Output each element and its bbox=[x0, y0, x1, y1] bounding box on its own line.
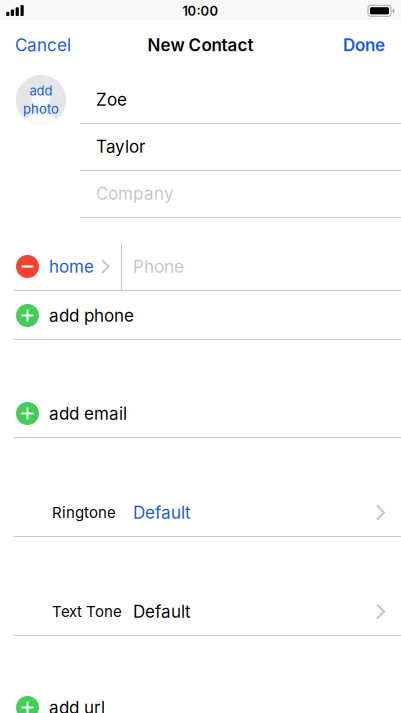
staticText: Taylor bbox=[96, 136, 145, 157]
button[interactable]: Done bbox=[343, 20, 401, 70]
staticText: add url bbox=[49, 697, 105, 713]
staticText: Phone bbox=[133, 256, 184, 277]
button[interactable]: home bbox=[0, 243, 109, 290]
staticText: add phone bbox=[49, 305, 134, 326]
button[interactable]: Cancel bbox=[0, 20, 71, 70]
button[interactable]: Text Tone bbox=[0, 588, 401, 635]
button[interactable]: add photo bbox=[16, 75, 66, 125]
staticText: home bbox=[49, 256, 94, 277]
button[interactable]: Taylor bbox=[0, 123, 401, 170]
staticText: add email bbox=[49, 403, 127, 424]
staticText: Default bbox=[133, 502, 191, 523]
button[interactable]: Ringtone bbox=[0, 489, 401, 536]
button[interactable]: Delete phone bbox=[0, 243, 39, 290]
staticText: New Contact bbox=[147, 35, 253, 55]
staticText: photo bbox=[23, 101, 59, 117]
button[interactable]: Company bbox=[0, 170, 401, 217]
button[interactable]: add email bbox=[0, 390, 401, 437]
staticText: Company bbox=[96, 183, 174, 204]
staticText: Default bbox=[133, 601, 191, 622]
staticText: Text Tone bbox=[52, 602, 122, 620]
staticText: Ringtone bbox=[52, 503, 116, 521]
staticText: Zoe bbox=[96, 89, 127, 110]
staticText: 10:00 bbox=[182, 3, 218, 19]
button[interactable]: Zoe bbox=[0, 76, 401, 123]
staticText: Done bbox=[343, 35, 385, 55]
staticText: add bbox=[29, 83, 52, 99]
staticText: Cancel bbox=[15, 35, 71, 55]
button[interactable]: Phone bbox=[0, 243, 401, 290]
button[interactable]: add phone bbox=[0, 292, 401, 339]
button[interactable]: add url bbox=[0, 684, 401, 713]
